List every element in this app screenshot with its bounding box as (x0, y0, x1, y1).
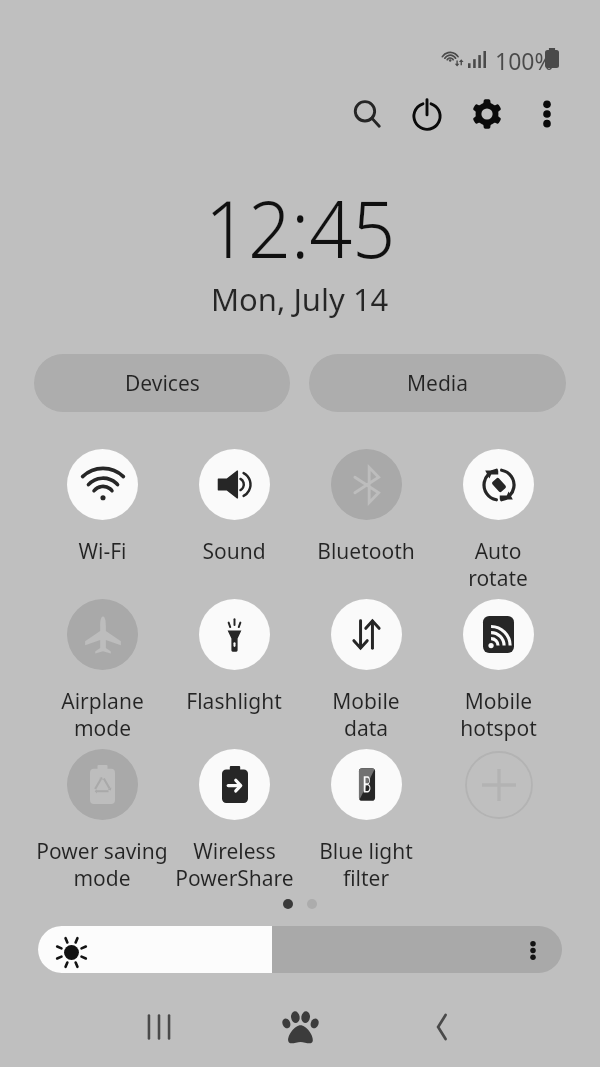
staticText: 100% (495, 45, 554, 76)
button[interactable]: Search (337, 84, 397, 144)
button[interactable]: Blue light filter (300, 749, 432, 899)
staticText: Power saving mode (36, 837, 168, 892)
button[interactable]: More options (517, 84, 577, 144)
staticText: Wireless PowerShare (175, 837, 294, 892)
staticText: Media (407, 369, 469, 398)
button[interactable]: Brightness options (517, 934, 549, 966)
button[interactable]: Wi-Fi (36, 449, 168, 599)
button[interactable]: Settings (457, 84, 517, 144)
button[interactable]: Power (397, 84, 457, 144)
button[interactable]: Bluetooth (300, 449, 432, 599)
staticText: Blue light filter (319, 837, 413, 892)
button[interactable]: Media (309, 354, 566, 412)
button[interactable]: Home (230, 991, 371, 1063)
staticText: Mobile hotspot (460, 687, 537, 742)
staticText: Mobile data (332, 687, 400, 742)
staticText: Bluetooth (317, 537, 415, 566)
staticText: Devices (125, 369, 200, 398)
button[interactable]: Auto rotate (432, 449, 564, 599)
staticText: Auto rotate (468, 537, 528, 592)
button[interactable]: Wireless PowerShare (168, 749, 300, 899)
button[interactable]: Brightness (38, 926, 562, 973)
staticText: Sound (202, 537, 266, 566)
button[interactable]: Recent apps (88, 991, 230, 1063)
staticText: Airplane mode (61, 687, 144, 742)
staticText: Mon, July 14 (211, 278, 389, 320)
button[interactable]: Back (371, 991, 512, 1063)
staticText: Flashlight (186, 687, 282, 716)
button[interactable]: Airplane mode (36, 599, 168, 749)
button[interactable]: Devices (34, 354, 290, 412)
button[interactable]: Sound (168, 449, 300, 599)
button[interactable]: Power saving mode (36, 749, 168, 899)
button[interactable]: Flashlight (168, 599, 300, 749)
button[interactable]: Mobile data (300, 599, 432, 749)
staticText: 12:45 (205, 172, 396, 281)
button[interactable]: Mobile hotspot (432, 599, 564, 749)
staticText: Wi-Fi (78, 537, 127, 566)
